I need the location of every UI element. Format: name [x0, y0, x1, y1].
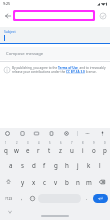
- staticText: Subject: [4, 29, 16, 34]
- staticText: 8: [82, 141, 84, 145]
- button[interactable]: ?123: [1, 190, 17, 207]
- button[interactable]: 2: [11, 139, 22, 156]
- staticText: 5: [49, 141, 51, 145]
- button[interactable]: 9: [88, 139, 99, 156]
- staticText: 2: [16, 141, 18, 145]
- staticText: ?123: [5, 196, 13, 201]
- button[interactable]: Hide keyboard: [6, 208, 13, 215]
- button[interactable]: 3: [22, 139, 33, 156]
- button[interactable]: Emoji: [27, 190, 37, 207]
- button[interactable]: m: [83, 173, 94, 190]
- button[interactable]: j: [72, 156, 83, 173]
- button[interactable]: Backspace: [94, 173, 110, 190]
- staticText: y: [21, 178, 25, 186]
- button[interactable]: GIF: [32, 129, 41, 138]
- button[interactable]: h: [61, 156, 72, 173]
- staticText: m: [86, 178, 92, 186]
- staticText: 0: [104, 141, 106, 145]
- button[interactable]: s: [17, 156, 28, 173]
- button[interactable]: Stickers: [18, 129, 27, 138]
- button[interactable]: g: [50, 156, 61, 173]
- button[interactable]: Send: [97, 10, 108, 21]
- staticText: n: [76, 178, 80, 186]
- staticText: a: [9, 161, 13, 169]
- button[interactable]: 5: [44, 139, 55, 156]
- button[interactable]: 4: [33, 139, 44, 156]
- button[interactable]: Back: [2, 10, 13, 21]
- button[interactable]: More: [83, 129, 92, 138]
- staticText: r: [37, 146, 40, 154]
- staticText: h: [65, 161, 69, 169]
- staticText: 7: [71, 141, 73, 145]
- button[interactable]: b: [61, 173, 72, 190]
- staticText: 9: [93, 141, 95, 145]
- button[interactable]: Shift: [0, 173, 17, 190]
- button[interactable]: Voice input: [98, 129, 107, 138]
- button[interactable]: Google apps: [3, 129, 12, 138]
- staticText: k: [87, 161, 91, 169]
- button[interactable]: n: [72, 173, 83, 190]
- staticText: i: [82, 146, 84, 154]
- staticText: u: [70, 146, 74, 154]
- button[interactable]: Settings: [62, 129, 71, 138]
- staticText: By publishing, you agree to the Terms of…: [12, 66, 106, 74]
- button[interactable]: l: [94, 156, 105, 173]
- button[interactable]: .: [82, 190, 92, 207]
- staticText: 4: [38, 141, 40, 145]
- staticText: ,: [21, 195, 23, 202]
- staticText: 3: [27, 141, 29, 145]
- staticText: p: [103, 146, 107, 154]
- button[interactable]: v: [50, 173, 61, 190]
- button[interactable]: Compose message: [0, 47, 110, 60]
- button[interactable]: f: [39, 156, 50, 173]
- button[interactable]: x: [28, 173, 39, 190]
- staticText: w: [14, 146, 19, 154]
- button[interactable]: 6: [55, 139, 66, 156]
- button[interactable]: Clipboard: [47, 129, 56, 138]
- button[interactable]: 8: [77, 139, 88, 156]
- button[interactable]: [15, 12, 93, 19]
- staticText: l: [99, 161, 101, 169]
- staticText: f: [43, 161, 46, 169]
- staticText: s: [21, 161, 24, 169]
- staticText: q: [4, 146, 8, 154]
- button[interactable]: c: [39, 173, 50, 190]
- staticText: Compose message: [6, 51, 44, 57]
- button[interactable]: 0: [99, 139, 110, 156]
- staticText: x: [32, 178, 36, 186]
- button[interactable]: a: [5, 156, 17, 173]
- staticText: v: [54, 178, 58, 186]
- staticText: 1: [5, 141, 7, 145]
- staticText: z: [59, 146, 62, 154]
- button[interactable]: 1: [0, 139, 11, 156]
- button[interactable]: ,: [17, 190, 27, 207]
- staticText: e: [26, 146, 30, 154]
- button[interactable]: k: [83, 156, 94, 173]
- staticText: c: [43, 178, 46, 186]
- staticText: b: [65, 178, 69, 186]
- staticText: d: [32, 161, 36, 169]
- staticText: j: [77, 161, 79, 169]
- staticText: o: [92, 146, 96, 154]
- staticText: .: [86, 195, 88, 202]
- staticText: 6: [60, 141, 62, 145]
- button[interactable]: Enter: [93, 194, 108, 203]
- button[interactable]: 7: [66, 139, 77, 156]
- staticText: g: [54, 161, 58, 169]
- button[interactable]: y: [17, 173, 28, 190]
- staticText: t: [48, 146, 51, 154]
- button[interactable]: d: [28, 156, 39, 173]
- staticText: 9:25: [3, 1, 11, 6]
